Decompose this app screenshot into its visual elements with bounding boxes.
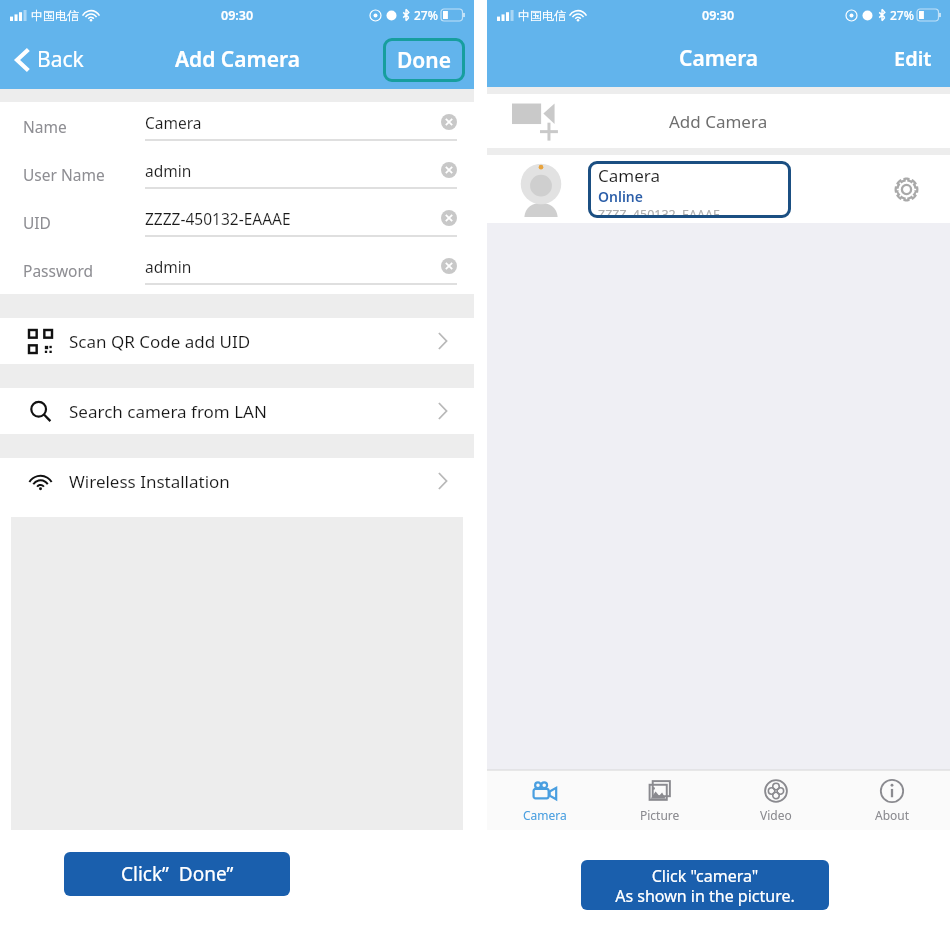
staticText: 09:30 xyxy=(221,7,254,24)
button[interactable]: Click” Done” xyxy=(64,852,290,896)
staticText: Name xyxy=(23,116,67,137)
staticText: About xyxy=(875,807,910,823)
staticText: Back xyxy=(37,45,84,74)
staticText: 中国电信 xyxy=(518,8,566,23)
staticText: User Name xyxy=(23,164,105,185)
button[interactable]: Scan QR Code add UID xyxy=(0,318,474,364)
staticText: Edit xyxy=(894,45,932,72)
staticText: Camera xyxy=(598,164,660,187)
staticText: Video xyxy=(760,807,792,823)
staticText: Click” Done” xyxy=(121,861,234,887)
staticText: Picture xyxy=(640,807,680,823)
staticText: 09:30 xyxy=(702,7,735,24)
button[interactable]: Camera xyxy=(487,771,602,830)
button[interactable]: Camera xyxy=(487,155,950,223)
button[interactable]: Video xyxy=(718,771,834,830)
staticText: admin xyxy=(145,256,192,277)
button[interactable]: Back xyxy=(16,30,84,89)
staticText: Camera xyxy=(679,44,759,73)
staticText: 27% xyxy=(414,7,438,23)
staticText: admin xyxy=(145,160,192,181)
staticText: Search camera from LAN xyxy=(69,400,267,423)
staticText: Add Camera xyxy=(175,45,300,74)
staticText: Wireless Installation xyxy=(69,470,230,493)
button[interactable]: Done xyxy=(383,38,465,82)
staticText: 中国电信 xyxy=(31,8,79,23)
staticText: Scan QR Code add UID xyxy=(69,330,251,353)
staticText: Password xyxy=(23,260,94,281)
staticText: Online xyxy=(598,187,643,206)
staticText: Add Camera xyxy=(669,110,768,133)
staticText: ZZZZ–450132–EAAAE xyxy=(598,206,720,218)
button[interactable]: Picture xyxy=(602,771,718,830)
staticText: Camera xyxy=(145,112,202,133)
button[interactable]: Wireless Installation xyxy=(0,458,474,504)
staticText: Done xyxy=(397,46,452,75)
button[interactable]: Edit xyxy=(894,30,932,87)
button[interactable]: About xyxy=(834,771,950,830)
button[interactable]: Add Camera xyxy=(487,94,950,148)
button[interactable]: Settings xyxy=(886,169,926,209)
staticText: Click "camera" As shown in the picture. xyxy=(615,865,795,906)
staticText: UID xyxy=(23,212,51,233)
button[interactable]: Search camera from LAN xyxy=(0,388,474,434)
staticText: 27% xyxy=(890,7,914,23)
staticText: ZZZZ-450132-EAAAE xyxy=(145,208,291,229)
button[interactable]: Click "camera" As shown in the picture. xyxy=(581,860,829,910)
staticText: Camera xyxy=(523,807,567,823)
